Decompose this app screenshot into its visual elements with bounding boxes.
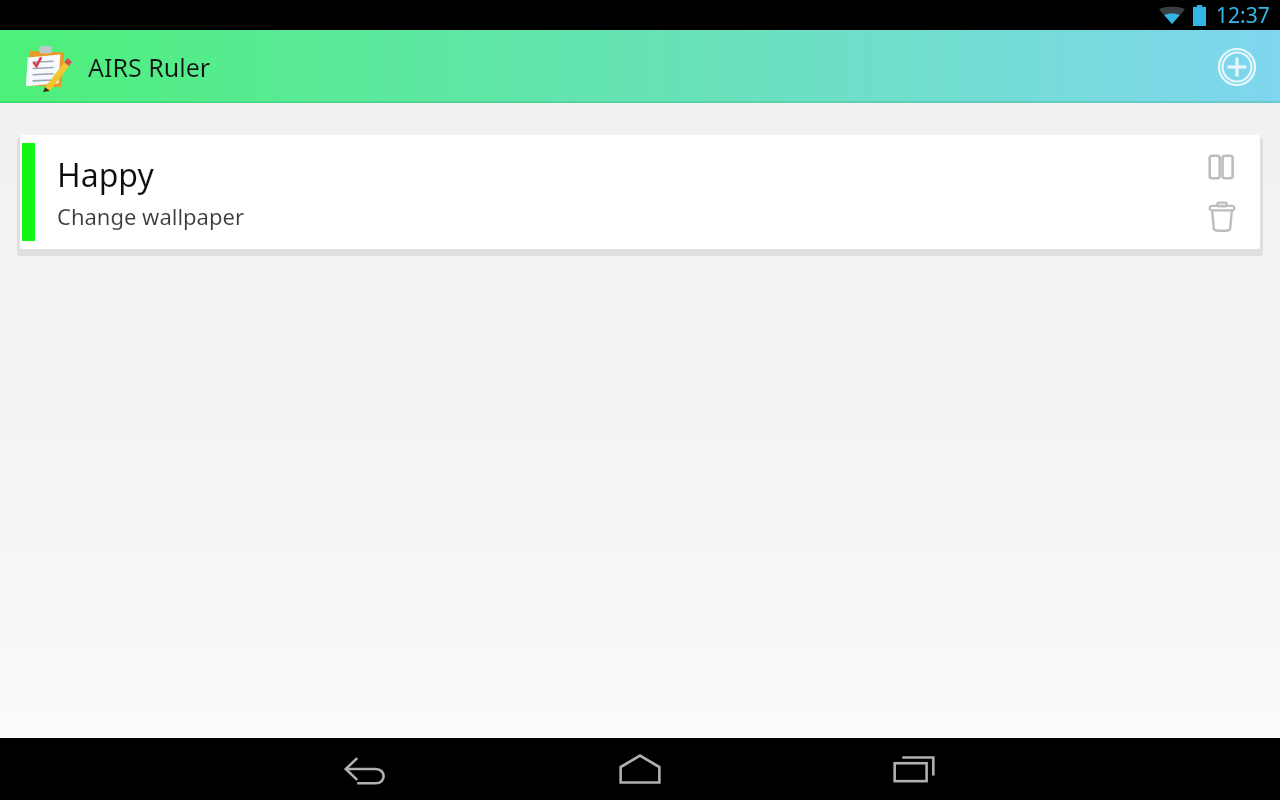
button[interactable]: Home	[503, 738, 777, 800]
button[interactable]: Recent apps	[777, 738, 1051, 800]
button[interactable]: Delete	[1200, 195, 1244, 239]
staticText: Change wallpaper	[57, 201, 244, 231]
button[interactable]: Add	[1214, 44, 1260, 90]
staticText: Happy	[57, 153, 154, 197]
staticText: 12:37	[1216, 1, 1270, 30]
staticText: AIRS Ruler	[88, 50, 211, 84]
button[interactable]: Happy	[20, 135, 1260, 249]
button[interactable]: Back	[229, 738, 503, 800]
button[interactable]: Split view	[1200, 145, 1244, 189]
